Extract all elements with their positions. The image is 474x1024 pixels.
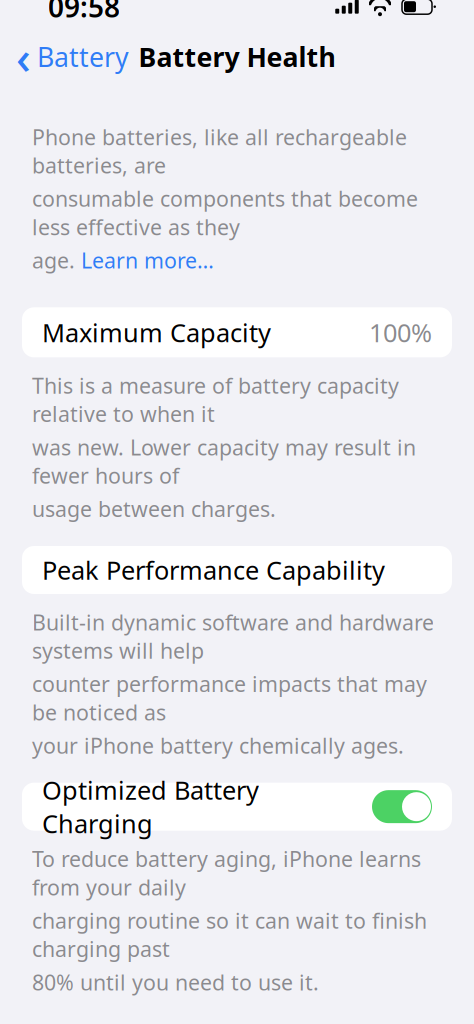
staticText: Peak Performance Capability	[42, 553, 385, 587]
staticText: 100%	[369, 315, 432, 349]
button[interactable]: Learn more…	[81, 246, 214, 274]
staticText: Maximum Capacity	[42, 315, 271, 349]
staticText: To reduce battery aging, iPhone learns f…	[32, 845, 421, 901]
staticText: 80% until you need to use it.	[32, 968, 319, 996]
staticText: Battery Health	[138, 39, 335, 74]
staticText: age.	[32, 246, 81, 274]
button[interactable]: Optimized Battery Charging	[22, 783, 452, 831]
staticText: your iPhone battery chemically ages.	[32, 731, 404, 760]
staticText: 09:58	[48, 0, 120, 25]
staticText: Learn more…	[81, 246, 214, 274]
staticText: consumable components that become less e…	[32, 184, 418, 241]
staticText: Battery	[37, 39, 129, 74]
staticText: charging routine so it can wait to finis…	[32, 906, 427, 963]
staticText: counter performance impacts that may be …	[32, 670, 427, 726]
button[interactable]: Maximum Capacity	[22, 307, 452, 357]
button[interactable]: ‹	[6, 23, 139, 91]
staticText: Phone batteries, like all rechargeable b…	[32, 123, 407, 179]
staticText: Built-in dynamic software and hardware s…	[32, 608, 434, 665]
button[interactable]: Peak Performance Capability	[22, 546, 452, 594]
staticText: usage between charges.	[32, 495, 276, 523]
staticText: This is a measure of battery capacity re…	[32, 371, 399, 428]
staticText: was new. Lower capacity may result in fe…	[32, 433, 416, 490]
staticText: ‹	[16, 27, 31, 87]
staticText: Optimized Battery Charging	[42, 773, 259, 840]
